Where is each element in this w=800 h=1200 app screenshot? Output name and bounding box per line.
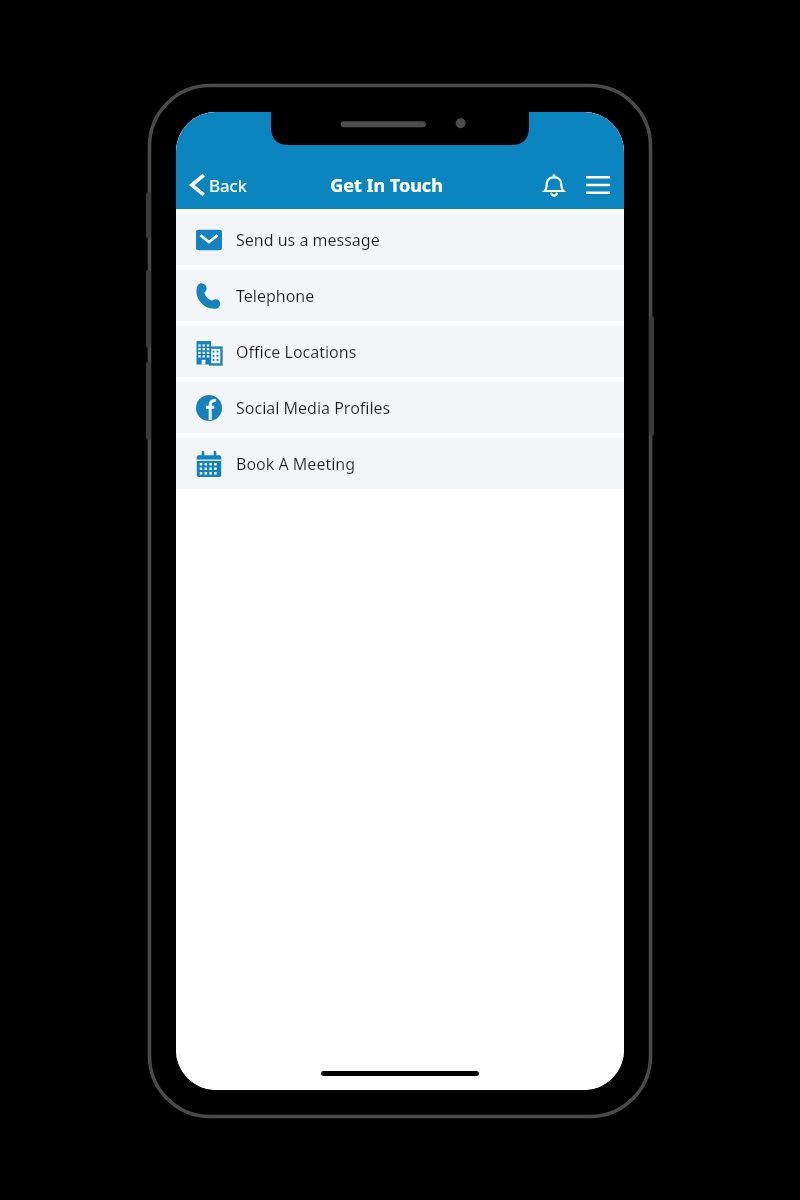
staticText: Send us a message — [236, 229, 380, 251]
staticText: Office Locations — [236, 341, 357, 363]
staticText: Telephone — [236, 285, 315, 307]
button[interactable]: Notifications — [534, 165, 574, 205]
button[interactable]: Office Locations — [176, 326, 624, 377]
button[interactable]: Telephone — [176, 270, 624, 321]
button[interactable]: Social Media Profiles — [176, 382, 624, 433]
button[interactable]: Menu — [578, 165, 618, 205]
staticText: Back — [209, 174, 247, 197]
staticText: Book A Meeting — [236, 453, 356, 475]
button[interactable]: Send us a message — [176, 214, 624, 265]
staticText: Social Media Profiles — [236, 397, 391, 419]
staticText: Get In Touch — [330, 173, 443, 198]
button[interactable]: Book A Meeting — [176, 438, 624, 489]
button[interactable]: Back — [186, 167, 251, 203]
